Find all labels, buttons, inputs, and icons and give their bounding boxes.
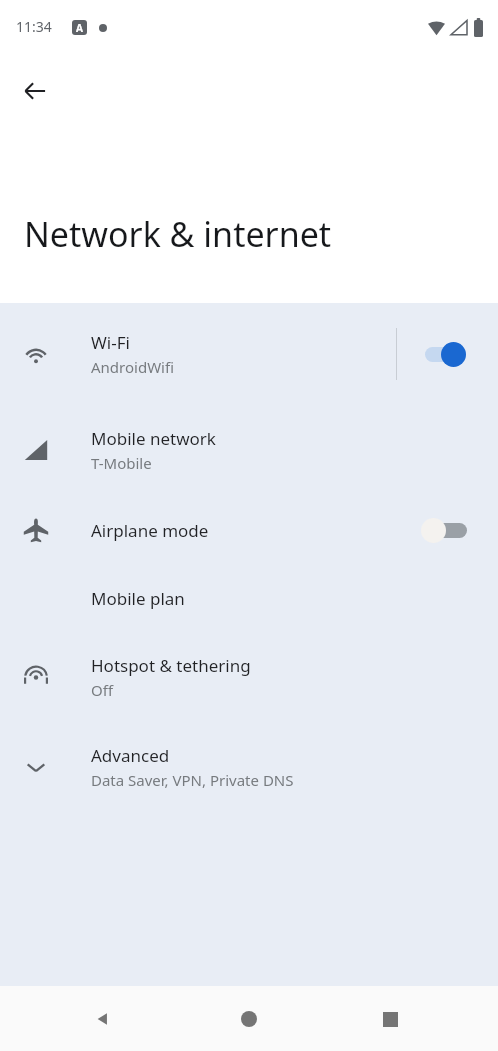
staticText: Off <box>91 680 114 700</box>
staticText: T-Mobile <box>91 453 152 473</box>
staticText: A <box>76 21 83 35</box>
staticText: Mobile plan <box>91 587 185 610</box>
button[interactable]: Home <box>225 995 273 1043</box>
button[interactable]: Mobile network <box>0 404 498 496</box>
button[interactable]: Airplane mode <box>0 496 498 564</box>
staticText: Wi-Fi <box>91 331 130 354</box>
button[interactable]: Wi-Fi on <box>419 334 477 374</box>
button[interactable]: Wi-Fi <box>0 303 498 404</box>
button[interactable]: Back <box>11 67 59 115</box>
button[interactable]: Airplane mode off <box>418 510 476 550</box>
staticText: Mobile network <box>91 427 216 450</box>
staticText: Data Saver, VPN, Private DNS <box>91 770 294 790</box>
button[interactable]: Mobile plan <box>0 564 498 632</box>
staticText: 11:34 <box>16 17 52 36</box>
staticText: Hotspot & tethering <box>91 654 251 677</box>
button[interactable]: Hotspot & tethering <box>0 632 498 722</box>
staticText: AndroidWifi <box>91 357 174 377</box>
staticText: Network & internet <box>24 211 332 257</box>
staticText: Airplane mode <box>91 519 209 542</box>
button[interactable]: Advanced <box>0 722 498 812</box>
button[interactable]: Back <box>79 995 127 1043</box>
button[interactable]: Recent apps <box>366 995 414 1043</box>
staticText: Advanced <box>91 744 170 767</box>
